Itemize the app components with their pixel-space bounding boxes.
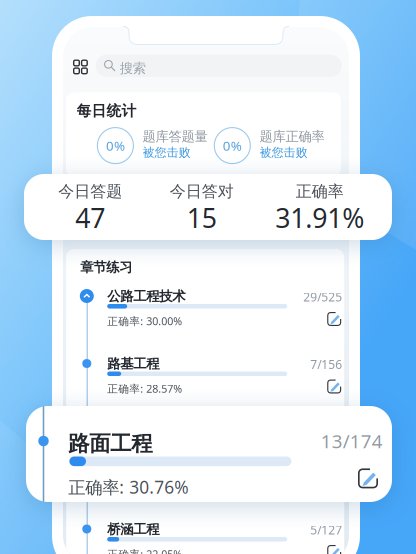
staticText: 正确率: 30.76% [107, 449, 182, 463]
staticText: 47 [75, 200, 105, 235]
staticText: 今日答题 [58, 181, 122, 201]
staticText: 29/525 [303, 289, 342, 305]
staticText: 正确率 [296, 181, 344, 201]
staticText: 0% [106, 137, 125, 154]
staticText: 路基工程 [107, 355, 159, 372]
staticText: 15 [187, 200, 217, 235]
staticText: 路面工程 [68, 431, 152, 457]
staticText: 章节练习 [80, 259, 132, 275]
button[interactable]: 路基工程 [78, 356, 342, 402]
staticText: 公路工程技术 [107, 288, 185, 304]
staticText: 搜索 [120, 60, 146, 77]
staticText: 7/156 [310, 356, 342, 372]
staticText: 题库答题量 [143, 128, 208, 145]
staticText: 0% [223, 137, 242, 154]
staticText: 正确率: 30.76% [68, 475, 188, 498]
staticText: 正确率: 30.00% [107, 314, 182, 328]
staticText: 题库正确率 [259, 128, 324, 145]
staticText: 31.91% [275, 200, 364, 235]
button[interactable]: Categories [74, 60, 87, 74]
staticText: 每日统计 [76, 102, 136, 120]
button[interactable]: 路面工程 [78, 424, 342, 470]
staticText: 路面工程 [107, 423, 159, 439]
staticText: 13/174 [321, 429, 383, 453]
staticText: 正确率: 22.05% [107, 547, 182, 554]
button[interactable]: 公路工程技术 [78, 289, 342, 335]
staticText: 今日答对 [170, 181, 234, 201]
button[interactable]: 桥涵工程 [78, 522, 342, 554]
staticText: 被您击败 [259, 145, 307, 160]
button[interactable]: 路面工程 [26, 406, 392, 502]
staticText: 被您击败 [143, 145, 191, 160]
staticText: 桥涵工程 [107, 521, 159, 537]
staticText: 正确率: 28.57% [107, 381, 182, 396]
button[interactable]: 搜索 [96, 55, 342, 77]
staticText: 5/127 [310, 522, 342, 538]
staticText: 13/174 [303, 424, 342, 440]
